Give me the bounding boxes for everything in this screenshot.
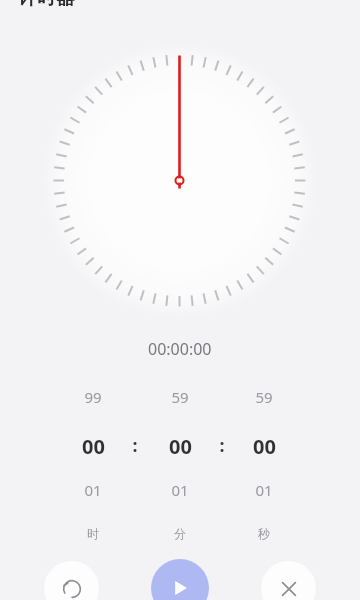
staticText: 计时器	[18, 0, 75, 10]
button[interactable]: 时	[53, 526, 133, 541]
staticText: 00	[169, 433, 192, 460]
button[interactable]: 秒	[224, 526, 304, 541]
staticText: 01	[84, 480, 102, 500]
staticText: :	[132, 433, 138, 458]
staticText: 59	[255, 387, 273, 407]
button[interactable]: 01	[224, 480, 304, 500]
button[interactable]: 01	[53, 480, 133, 500]
button[interactable]: 00	[140, 433, 220, 460]
staticText: 01	[255, 480, 273, 500]
staticText: 00	[253, 433, 276, 460]
staticText: 00	[82, 433, 105, 460]
staticText: 00:00:00	[148, 338, 212, 360]
button[interactable]: 计时器	[18, 0, 75, 10]
button[interactable]: :	[182, 433, 262, 458]
button[interactable]: 01	[140, 480, 220, 500]
button[interactable]: :	[95, 433, 175, 458]
staticText: :	[219, 433, 225, 458]
staticText: 59	[171, 387, 189, 407]
staticText: 秒	[258, 526, 270, 541]
staticText: 分	[174, 526, 186, 541]
staticText: 时	[87, 526, 99, 541]
button[interactable]: 59	[224, 387, 304, 407]
button[interactable]: 00	[224, 433, 304, 460]
button[interactable]: Close	[261, 561, 316, 600]
button[interactable]: Reset	[44, 561, 99, 600]
staticText: 01	[171, 480, 189, 500]
button[interactable]: 00	[53, 433, 133, 460]
staticText: 99	[84, 387, 102, 407]
button[interactable]: 分	[140, 526, 220, 541]
button[interactable]: 59	[140, 387, 220, 407]
button[interactable]: Start	[151, 559, 209, 600]
button[interactable]: 99	[53, 387, 133, 407]
